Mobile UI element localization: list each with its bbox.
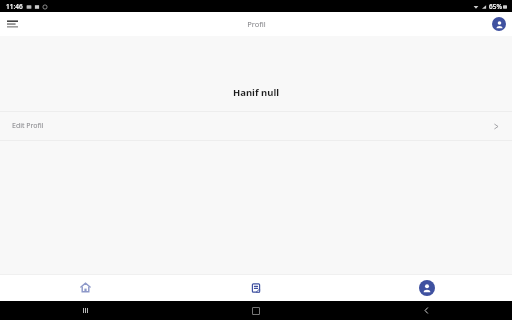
button[interactable]: Recent apps [0, 301, 170, 320]
button[interactable]: Home [170, 301, 341, 320]
button[interactable]: Back [341, 301, 512, 320]
button[interactable]: Notes [170, 274, 341, 301]
button[interactable]: Home [0, 274, 170, 301]
staticText: Edit Profil [12, 121, 44, 131]
staticText: Profil [247, 19, 266, 29]
button[interactable]: Account [490, 15, 508, 33]
button[interactable]: Profile [341, 274, 512, 301]
staticText: 11:46 [6, 2, 23, 11]
button[interactable]: Edit Profil [0, 112, 512, 140]
staticText: 65% [489, 2, 502, 11]
staticText: Hanif null [0, 86, 512, 99]
button[interactable]: Open navigation menu [0, 12, 24, 36]
